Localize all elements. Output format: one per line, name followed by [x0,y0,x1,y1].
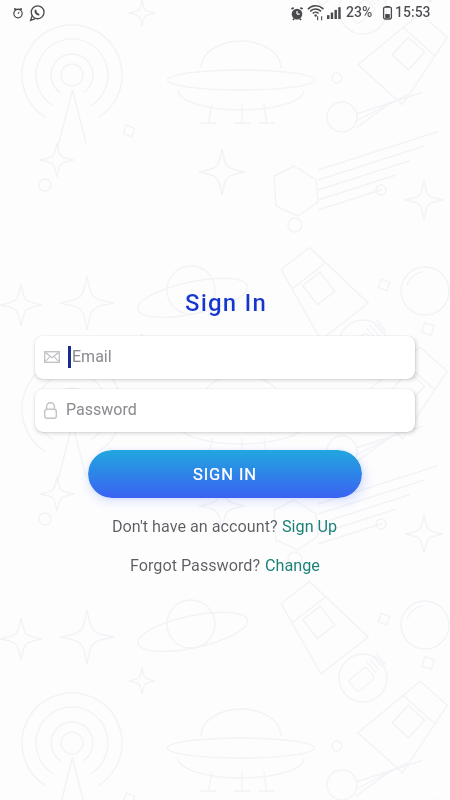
other: Alarm [13,8,23,18]
button[interactable]: Password [35,389,415,432]
staticText: Email [72,347,112,366]
staticText: 23% [346,4,373,20]
staticText: 15:53 [395,4,431,20]
staticText: Sign Up [282,517,338,536]
button[interactable]: Email [35,336,415,379]
staticText: Forgot Password? [130,556,265,575]
other: WhatsApp [29,5,45,21]
staticText: Don't have an account? [112,517,282,536]
staticText: Change [265,556,320,575]
staticText: Password [66,400,137,419]
button[interactable]: SIGN IN [88,450,362,498]
staticText: SIGN IN [193,465,257,484]
staticText: Sign In [185,289,268,317]
button[interactable]: Sign Up [282,517,338,536]
button[interactable]: Change [265,556,320,575]
